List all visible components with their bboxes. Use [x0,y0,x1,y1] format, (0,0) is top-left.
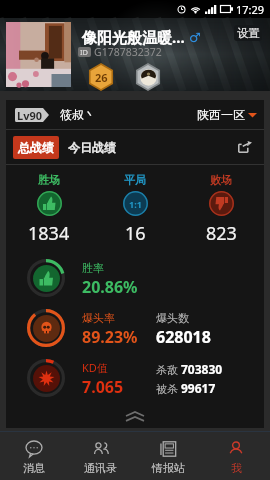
staticText: G1787832372 [94,45,162,59]
button[interactable]: 总战绩 [13,136,59,159]
staticText: 628018 [156,326,211,348]
staticText: 16 [125,221,146,246]
staticText: 89.23% [82,326,138,348]
staticText: 823 [206,221,237,246]
staticText: 99617 [181,380,216,396]
staticText: 17:29 [236,2,265,17]
staticText: 1:1 [129,198,142,210]
staticText: 20.86% [82,276,138,298]
button[interactable]: 消息 [0,432,67,480]
staticText: Lv90 [17,108,43,122]
staticText: 情报站 [152,461,185,475]
staticText: 筱叔丶 [60,107,96,122]
staticText: 7.065 [82,376,124,398]
staticText: 杀敌 [156,362,181,377]
staticText: 胜场 [38,173,60,187]
staticText: 26 [95,70,108,85]
staticText: 设置 [237,26,260,40]
staticText: 今日战绩 [68,140,116,155]
staticText: 败场 [210,173,232,187]
button[interactable]: Share [232,134,258,160]
button[interactable]: 情报站 [134,432,202,480]
staticText: 我 [231,461,242,475]
button[interactable]: 今日战绩 [64,137,120,158]
staticText: 被杀 [156,381,181,396]
staticText: ♂ [189,30,201,45]
staticText: 平局 [124,173,146,187]
button[interactable]: 设置 [234,25,262,41]
staticText: 通讯录 [84,461,117,475]
staticText: 爆头率 [82,311,115,325]
staticText: 胜率 [82,261,104,275]
staticText: 陕西一区 [197,107,245,122]
staticText: KD值 [82,360,108,375]
staticText: 消息 [23,461,45,475]
staticText: 爆头数 [156,311,189,325]
staticText: 1834 [28,221,70,246]
staticText: 像阳光般温暖... [82,27,185,47]
staticText: ID [80,47,89,57]
staticText: 总战绩 [18,140,54,155]
button[interactable]: 通讯录 [67,432,134,480]
staticText: 703830 [181,361,223,377]
button[interactable]: 我 [202,432,270,480]
